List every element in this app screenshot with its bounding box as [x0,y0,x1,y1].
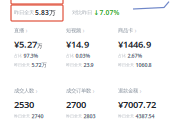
staticText: 2740 [31,113,43,120]
staticText: 对比昨日 [72,9,92,16]
staticText: › [134,26,136,35]
staticText: ¥5.27 [14,38,37,50]
staticText: 昨日全天 [66,62,82,67]
button[interactable]: 成交订单数 [66,86,118,120]
staticText: 昨日全天 [118,114,134,119]
staticText: ¥7007.72 [118,98,156,111]
staticText: 占比 [118,53,126,58]
staticText: 0.03% [75,52,90,59]
staticText: 4387.54 [135,113,154,120]
staticText: 占比 [66,53,74,58]
staticText: 退款金额 [118,88,138,94]
button[interactable]: 退款金额 [118,86,170,120]
staticText: 商品卡 [118,27,133,34]
staticText: 昨日全天 [14,9,34,16]
staticText: › [35,86,37,95]
staticText: 昨日全天 [14,62,30,67]
staticText: 2700 [66,98,86,111]
staticText: 2.67% [127,52,142,59]
staticText: ¥14.9 [66,38,89,50]
button[interactable]: 直播 [14,26,66,68]
staticText: › [92,86,94,95]
staticText: 1060.8 [135,61,151,68]
staticText: ↓7.07% [93,8,119,17]
staticText: 昨日全天 [66,114,82,119]
staticText: 2803 [83,113,95,120]
staticText: 97.3% [23,52,38,59]
staticText: 2530 [14,98,34,111]
staticText: 直播 [14,27,24,34]
staticText: › [82,26,84,35]
staticText: 短视频 [66,27,81,34]
button[interactable]: 成交人数 [14,86,66,120]
staticText: › [25,26,27,35]
button[interactable]: 短视频 [66,26,118,68]
staticText: 占比 [14,53,22,58]
staticText: › [139,86,141,95]
staticText: 成交人数 [14,88,34,94]
staticText: ¥1446.9 [118,38,151,50]
staticText: 成交订单数 [66,88,91,94]
staticText: 昨日全天 [118,62,134,67]
staticText: 昨日全天 [14,114,30,119]
staticText: 5.72万 [31,61,46,68]
staticText: 万 [37,43,42,49]
staticText: 23.9 [83,61,93,68]
button[interactable]: 商品卡 [118,26,170,68]
staticText: 5.83万 [35,8,56,17]
